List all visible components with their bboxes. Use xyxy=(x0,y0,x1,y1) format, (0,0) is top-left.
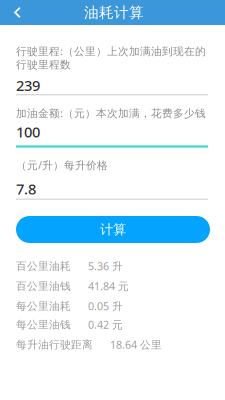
staticText: 百公里油钱 xyxy=(16,279,71,293)
staticText: 7.8 xyxy=(16,179,36,198)
staticText: 18.64 公里 xyxy=(110,337,162,352)
staticText: 油耗计算 xyxy=(84,3,144,21)
staticText: 行驶里程:（公里）上次加满油到现在的行驶里程数 xyxy=(16,44,206,71)
staticText: 239 xyxy=(16,75,40,95)
button[interactable]: 100 xyxy=(16,124,208,147)
staticText: 计算 xyxy=(100,221,126,238)
staticText: 加油金额:（元）本次加满，花费多少钱 xyxy=(16,106,206,120)
staticText: 每公里油钱 xyxy=(16,318,71,331)
staticText: 每公里油耗 xyxy=(16,299,71,313)
staticText: 0.05 升 xyxy=(88,299,123,313)
staticText: 5.36 升 xyxy=(88,259,123,273)
staticText: 每升油行驶距离 xyxy=(16,338,93,351)
button[interactable]: 计算 xyxy=(16,216,210,243)
staticText: 41.84 元 xyxy=(88,279,129,293)
staticText: 100 xyxy=(16,122,40,141)
staticText: 0.42 元 xyxy=(88,317,123,332)
button[interactable]: 239 xyxy=(16,62,208,96)
button[interactable]: 7.8 xyxy=(16,176,208,200)
staticText: 百公里油耗 xyxy=(16,259,71,273)
staticText: （元/升）每升价格 xyxy=(16,158,108,172)
button[interactable]: Back xyxy=(0,0,25,25)
